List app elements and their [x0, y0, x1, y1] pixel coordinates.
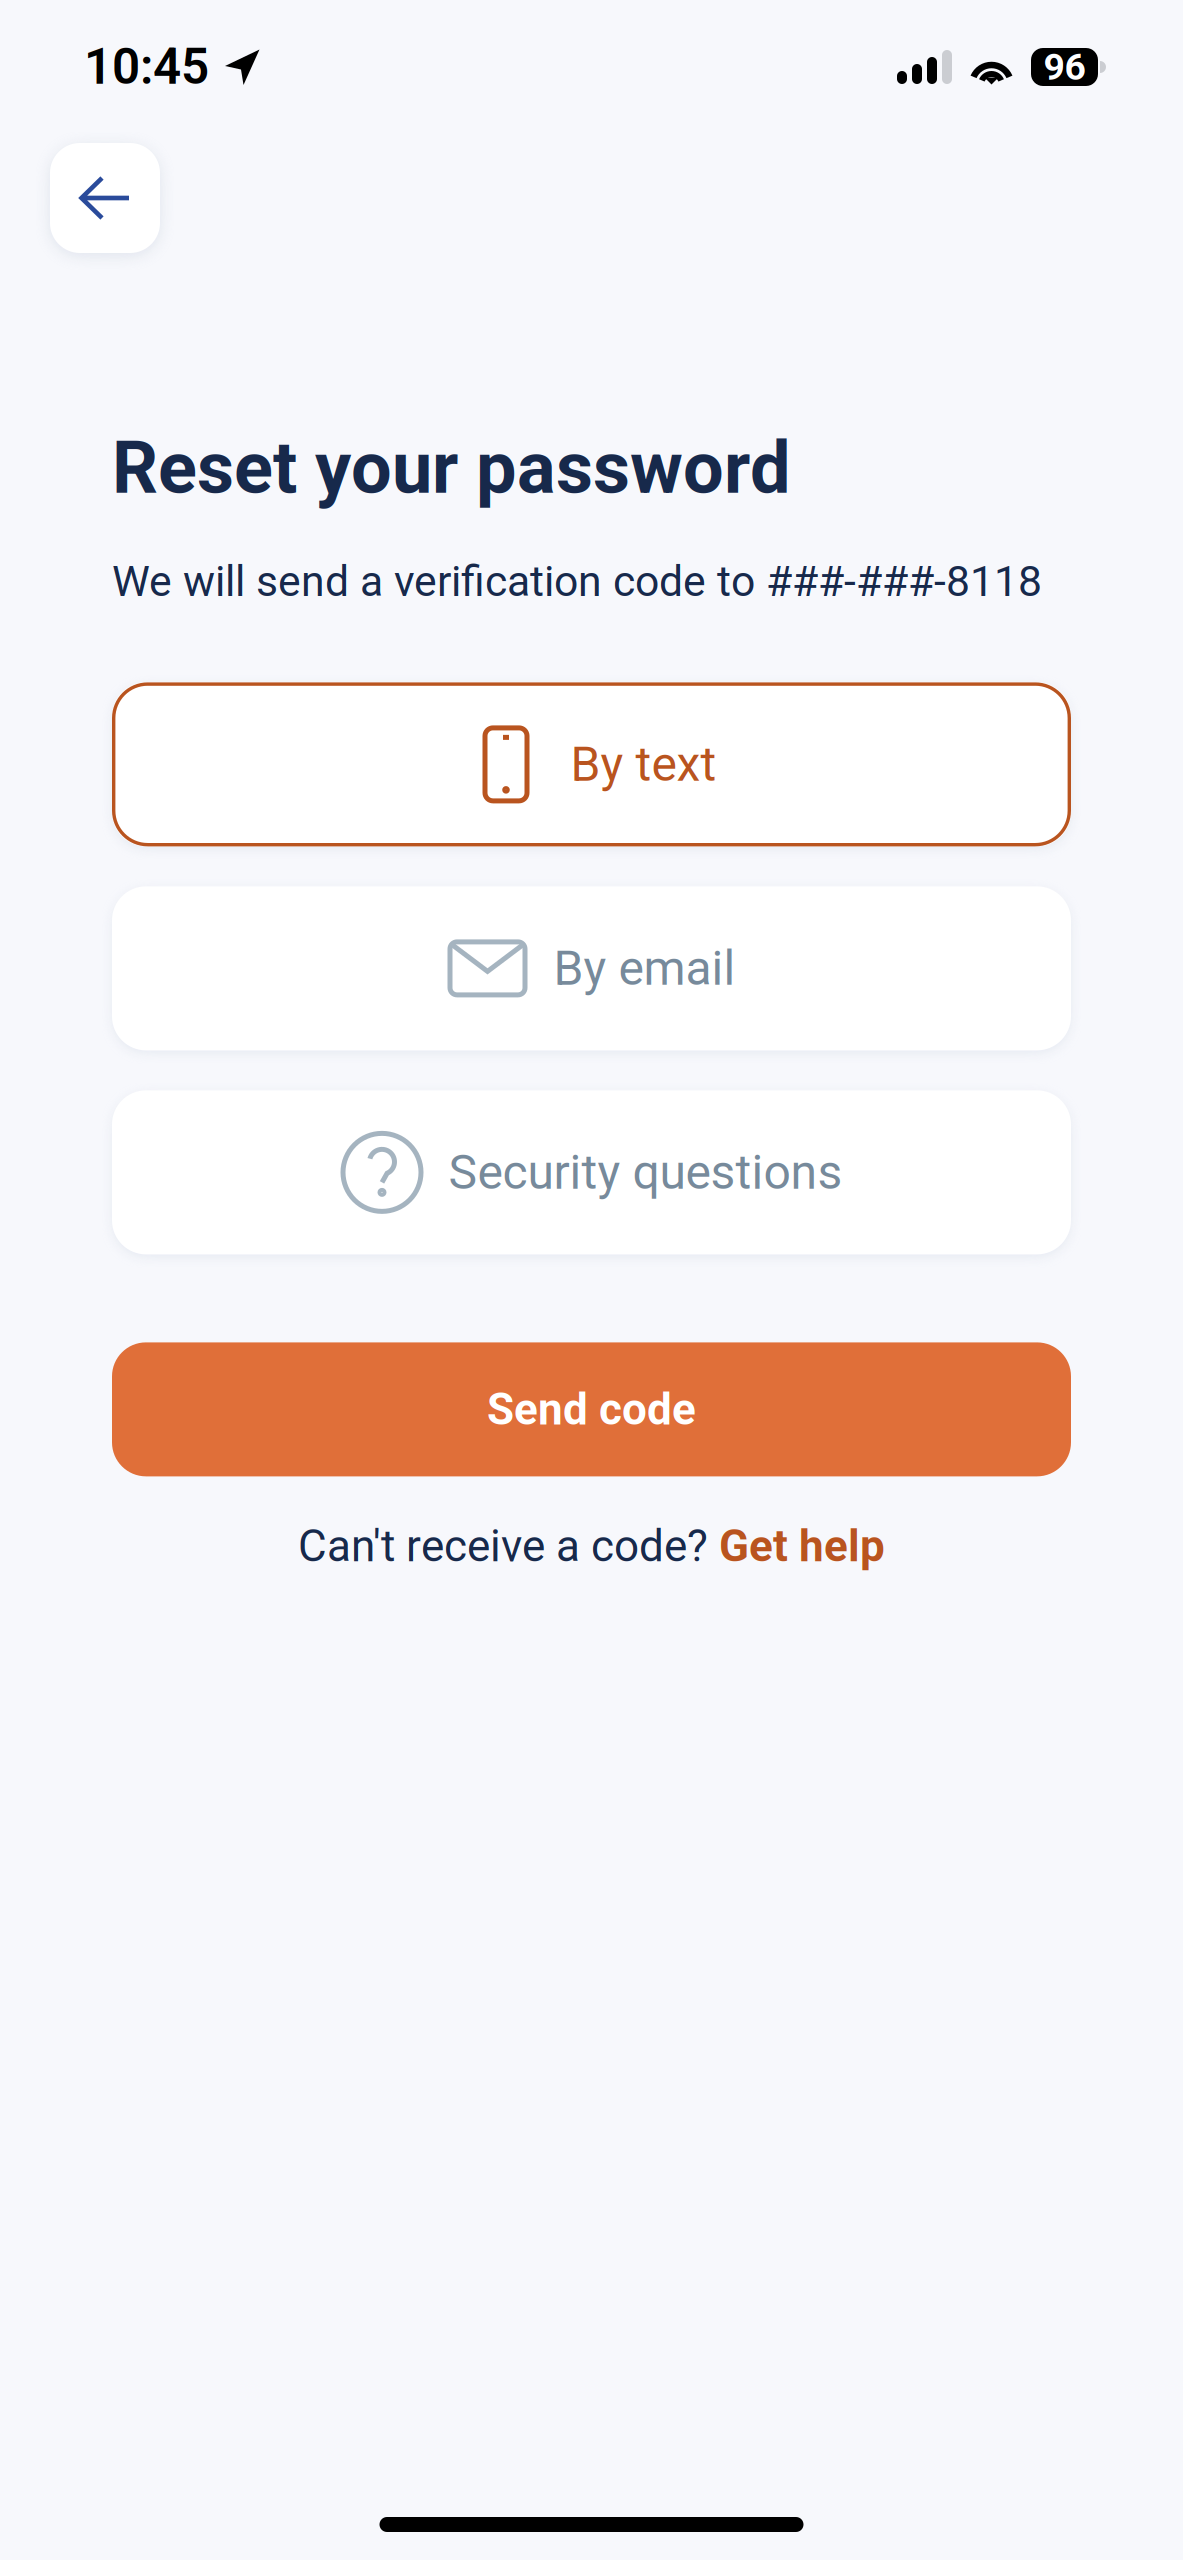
- staticText: Reset your password: [112, 426, 791, 510]
- staticText: By text: [570, 736, 716, 792]
- staticText: We will send a verification code to ###-…: [112, 556, 1042, 606]
- button[interactable]: Security questions: [112, 1090, 1071, 1254]
- staticText: Get help: [719, 1520, 885, 1572]
- button[interactable]: By text: [112, 682, 1071, 846]
- staticText: Security questions: [448, 1144, 842, 1200]
- staticText: Can't receive a code?: [298, 1520, 719, 1572]
- staticText: By email: [553, 940, 735, 996]
- staticText: 10:45: [84, 38, 209, 96]
- button[interactable]: By email: [112, 886, 1071, 1050]
- staticText: 96: [1043, 45, 1085, 89]
- staticText: Send code: [487, 1384, 696, 1435]
- button[interactable]: Can't receive a code?: [112, 1520, 1071, 1572]
- button[interactable]: Back: [50, 143, 160, 253]
- button[interactable]: Send code: [112, 1342, 1071, 1476]
